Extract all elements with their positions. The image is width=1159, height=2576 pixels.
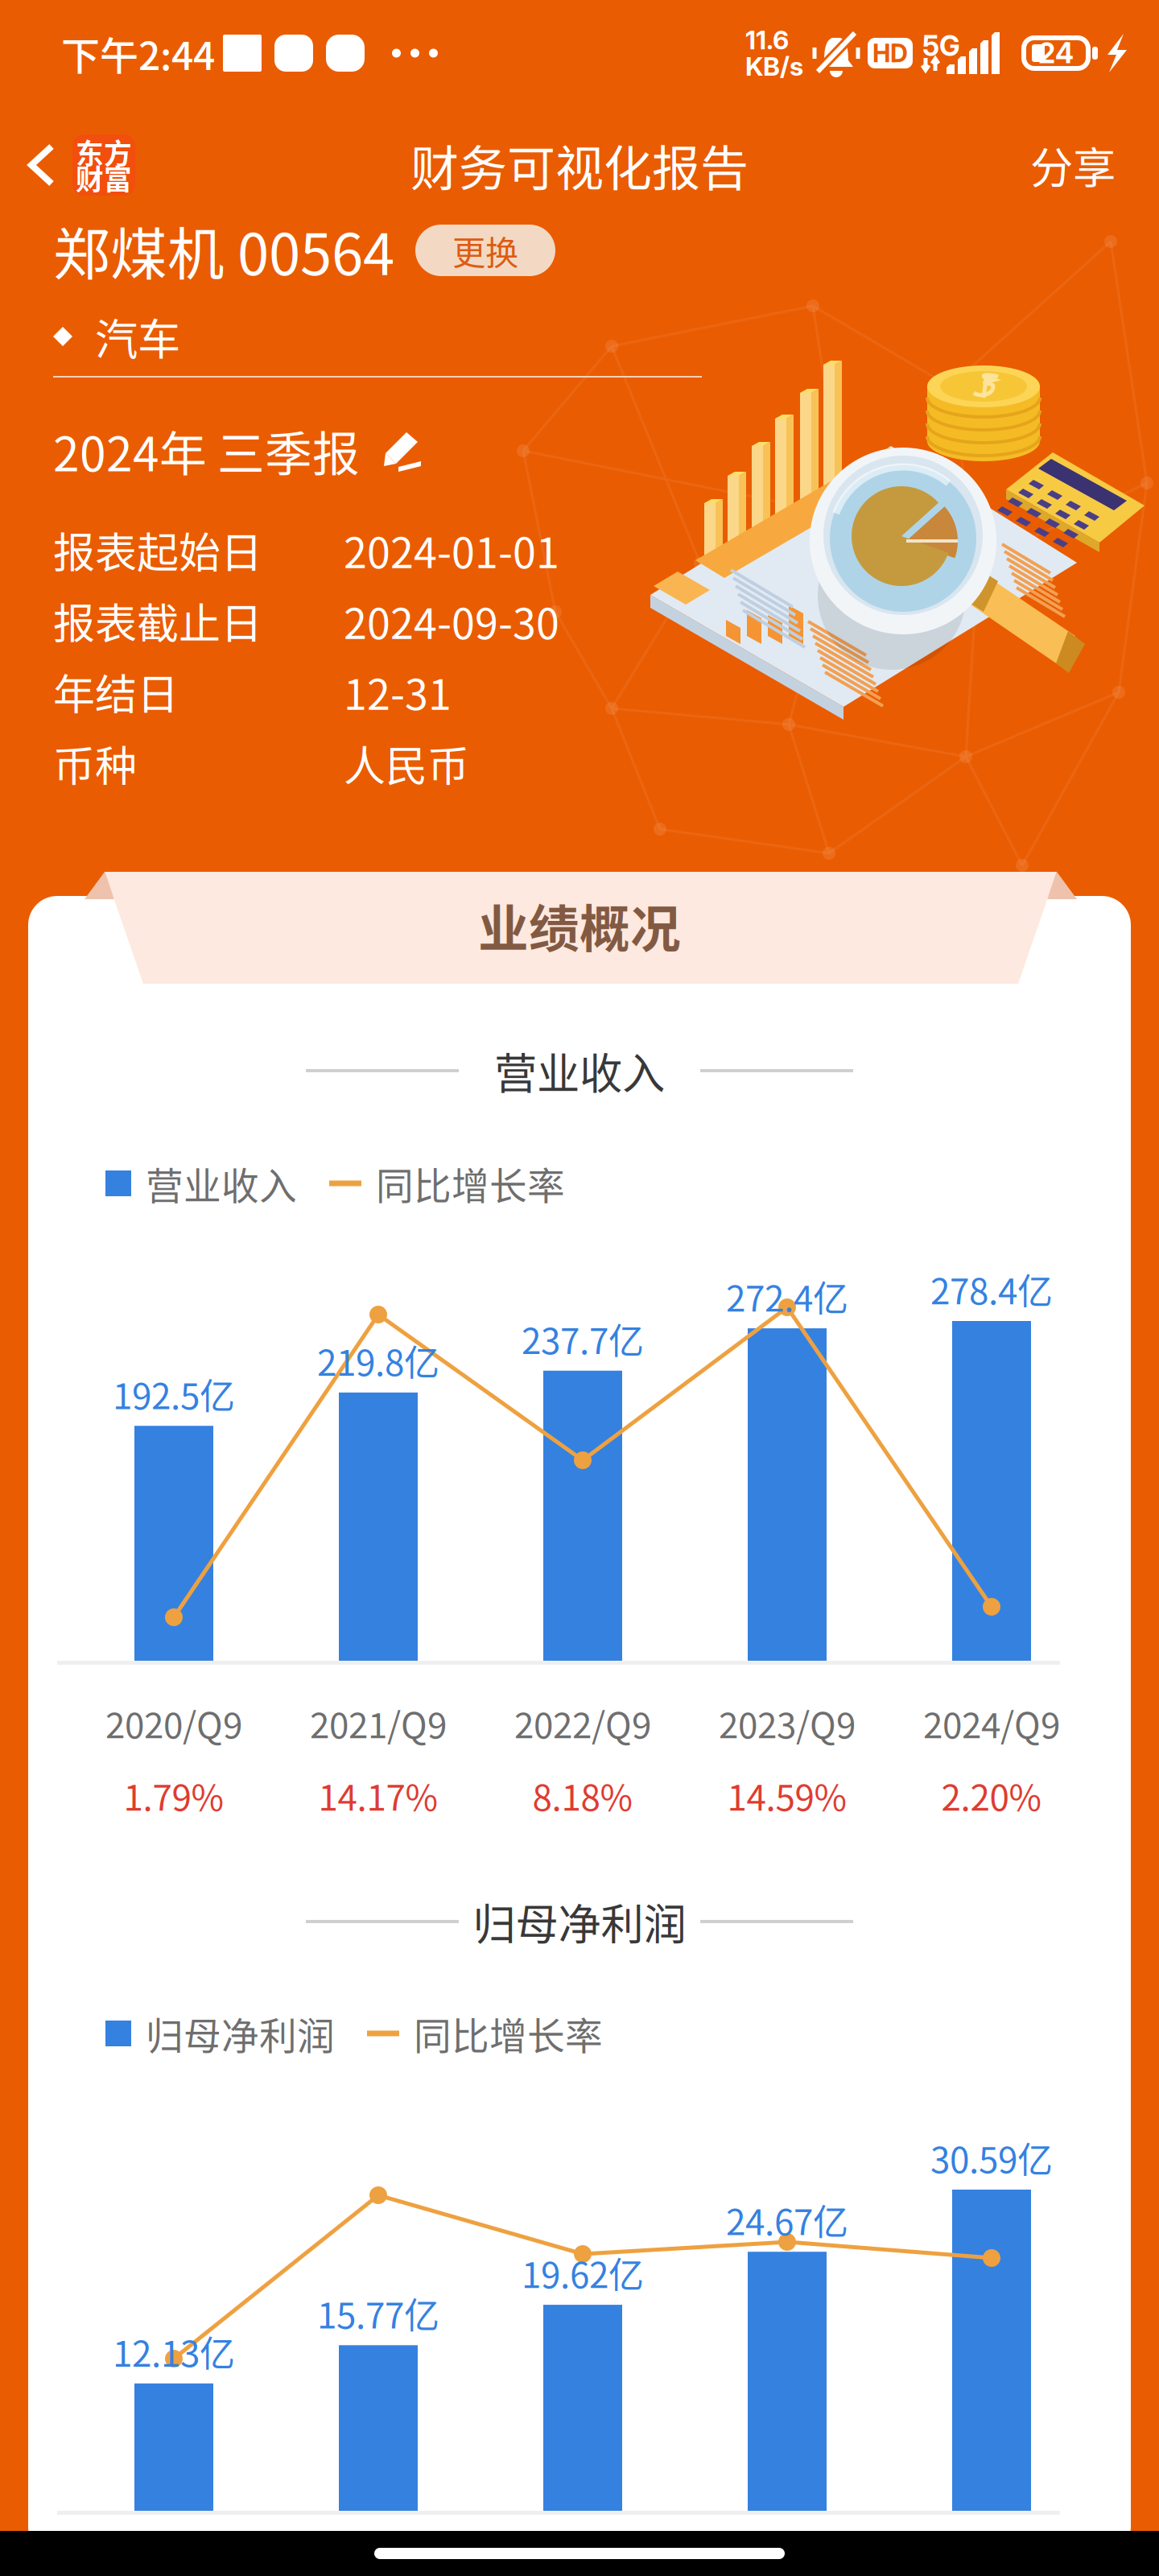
staticText: 归母净利润	[146, 2006, 335, 2061]
staticText: 同比增长率	[376, 1156, 565, 1211]
staticText: 14.59%	[727, 1769, 847, 1821]
staticText: 东方	[76, 132, 132, 172]
staticText: 2024-01-01	[344, 520, 559, 580]
button[interactable]: Edit reporting period	[384, 427, 423, 474]
staticText: 郑煤机 00564	[53, 209, 394, 291]
staticText: 下午2:44	[61, 25, 215, 81]
staticText: 272.4亿	[726, 1270, 848, 1322]
staticText: 1.79%	[124, 1769, 224, 1821]
staticText: 2023/Q9	[719, 1697, 856, 1748]
staticText: 2021/Q9	[310, 1697, 447, 1748]
staticText: 同比增长率	[414, 2006, 603, 2061]
staticText: 11.6	[745, 24, 789, 56]
staticText: KB/s	[745, 51, 803, 82]
staticText: 人民币	[344, 733, 469, 793]
staticText: 归母净利润	[473, 1890, 686, 1953]
staticText: 2024年 三季报	[53, 417, 360, 485]
staticText: 192.5亿	[113, 1368, 235, 1419]
staticText: 5G	[922, 29, 960, 63]
button[interactable]: Back	[19, 129, 68, 201]
button[interactable]: 更换	[415, 225, 555, 276]
staticText: 30.59亿	[930, 2132, 1053, 2183]
staticText: 分享	[1030, 134, 1116, 196]
staticText: 12.13亿	[113, 2326, 235, 2377]
staticText: 营业收入	[494, 1040, 665, 1102]
staticText: 219.8亿	[317, 1335, 439, 1386]
staticText: 2024-09-30	[344, 590, 559, 651]
staticText: 24.67亿	[726, 2194, 848, 2245]
staticText: 8.18%	[532, 1769, 633, 1821]
staticText: 业绩概况	[478, 888, 681, 961]
staticText: 2024/Q9	[923, 1697, 1060, 1748]
staticText: 278.4亿	[930, 1263, 1053, 1314]
staticText: HD	[872, 38, 908, 68]
staticText: 年结日	[53, 661, 179, 722]
button[interactable]: 分享	[1013, 123, 1133, 207]
staticText: 报表截止日	[53, 590, 262, 651]
staticText: 14.17%	[318, 1769, 438, 1821]
staticText: 237.7亿	[522, 1313, 644, 1364]
staticText: 财务可视化报告	[410, 130, 749, 200]
staticText: 12-31	[344, 661, 452, 722]
staticText: 2020/Q9	[105, 1697, 242, 1748]
staticText: 报表起始日	[53, 520, 262, 580]
staticText: 2022/Q9	[514, 1697, 651, 1748]
staticText: 币种	[53, 733, 137, 793]
staticText: 2.20%	[941, 1769, 1042, 1821]
staticText: 财富	[76, 158, 132, 198]
staticText: 更换	[452, 226, 518, 275]
staticText: 19.62亿	[522, 2247, 644, 2298]
staticText: 15.77亿	[317, 2287, 439, 2339]
staticText: 24	[1038, 36, 1074, 70]
staticText: 营业收入	[146, 1156, 297, 1211]
staticText: 汽车	[95, 305, 180, 368]
